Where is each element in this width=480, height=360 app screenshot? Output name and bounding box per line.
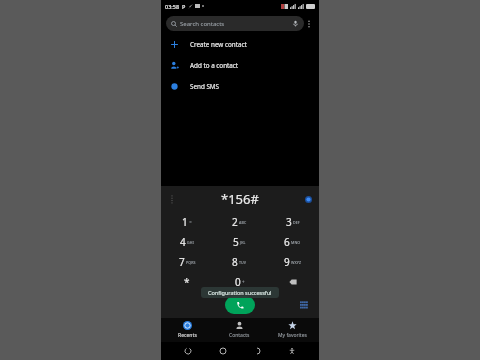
- button[interactable]: Voice search: [292, 20, 299, 27]
- staticText: MNO: [291, 240, 301, 245]
- button[interactable]: Recent apps: [250, 344, 264, 358]
- button[interactable]: Recents: [161, 318, 213, 342]
- button[interactable]: Create new contact: [161, 34, 319, 55]
- staticText: *156#: [221, 190, 259, 208]
- staticText: Search contacts: [180, 20, 225, 28]
- button[interactable]: 4: [161, 232, 213, 252]
- staticText: TUV: [239, 260, 247, 265]
- button[interactable]: Home: [216, 344, 230, 358]
- staticText: 3: [286, 215, 292, 229]
- staticText: ∞: [189, 220, 193, 224]
- staticText: GHI: [187, 240, 194, 245]
- button[interactable]: 2: [213, 212, 266, 232]
- button[interactable]: *: [161, 272, 213, 292]
- button[interactable]: 8: [213, 252, 266, 272]
- staticText: 1: [182, 215, 188, 229]
- button[interactable]: Call: [225, 296, 255, 314]
- button[interactable]: Back: [181, 344, 195, 358]
- button[interactable]: My favorites: [266, 318, 319, 342]
- staticText: 2: [232, 215, 238, 229]
- button[interactable]: Add to a contact: [161, 55, 319, 76]
- button[interactable]: More options: [304, 16, 314, 31]
- staticText: JKL: [240, 240, 246, 245]
- button[interactable]: 9: [266, 252, 319, 272]
- staticText: 6: [284, 235, 290, 249]
- staticText: DEF: [293, 220, 300, 225]
- staticText: P: [182, 3, 186, 10]
- staticText: +: [242, 279, 245, 285]
- button[interactable]: 1: [161, 212, 213, 232]
- button[interactable]: Add: [303, 194, 313, 204]
- button[interactable]: Send SMS: [161, 76, 319, 97]
- button[interactable]: Accessibility: [285, 344, 299, 358]
- button[interactable]: Drag handle: [167, 194, 177, 204]
- button[interactable]: Contacts: [213, 318, 266, 342]
- button[interactable]: 3: [266, 212, 319, 232]
- staticText: My favorites: [278, 332, 307, 339]
- staticText: Contacts: [229, 332, 250, 339]
- staticText: 0: [235, 275, 241, 289]
- button[interactable]: Backspace: [266, 272, 319, 292]
- button[interactable]: 6: [266, 232, 319, 252]
- staticText: 8: [232, 255, 238, 269]
- staticText: ABC: [239, 220, 247, 225]
- button[interactable]: 5: [213, 232, 266, 252]
- button[interactable]: 0: [213, 272, 266, 292]
- staticText: *: [184, 275, 190, 289]
- staticText: 5: [233, 235, 239, 249]
- staticText: 7: [179, 255, 185, 269]
- staticText: Configuration successful: [208, 289, 272, 296]
- staticText: Create new contact: [190, 40, 247, 49]
- staticText: 4: [180, 235, 186, 249]
- staticText: 9: [284, 255, 290, 269]
- staticText: Recents: [178, 332, 197, 339]
- staticText: Add to a contact: [190, 61, 239, 70]
- staticText: WXYZ: [291, 260, 302, 265]
- button[interactable]: 7: [161, 252, 213, 272]
- button[interactable]: Hide keypad: [299, 300, 309, 310]
- staticText: 03:58: [165, 3, 180, 10]
- staticText: PQRS: [186, 260, 196, 265]
- staticText: Send SMS: [190, 82, 220, 91]
- button[interactable]: Search contacts: [166, 16, 304, 31]
